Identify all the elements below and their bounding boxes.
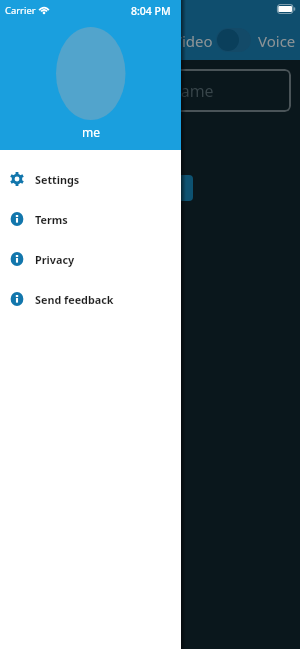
staticText: Privacy [35, 252, 75, 267]
button[interactable]: Settings [0, 159, 181, 199]
button[interactable]: me [0, 0, 181, 150]
staticText: Enter a conversation name [12, 80, 214, 102]
button[interactable]: Terms [0, 199, 181, 239]
button[interactable]: Switch between video and voice [216, 28, 251, 52]
staticText: Terms [35, 212, 68, 227]
staticText: 8:04 PM [131, 4, 171, 18]
button[interactable]: Privacy [0, 239, 181, 279]
button[interactable]: Send feedback [0, 279, 181, 319]
staticText: Carrier [5, 4, 36, 17]
staticText: Settings [35, 172, 80, 187]
staticText: Video [173, 31, 213, 51]
staticText: Voice [258, 31, 296, 51]
button[interactable] [135, 175, 193, 201]
staticText: Send feedback [35, 292, 114, 307]
button[interactable]: Enter a conversation name [9, 69, 291, 112]
staticText: me [82, 124, 100, 140]
